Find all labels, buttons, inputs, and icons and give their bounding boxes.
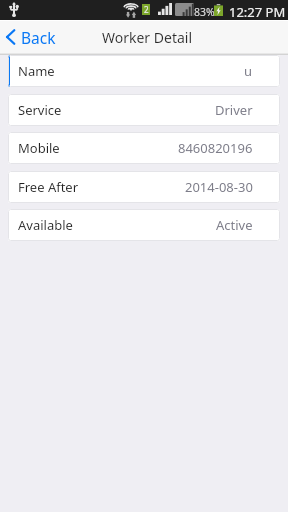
button[interactable]: Name bbox=[8, 55, 280, 87]
staticText: 2 bbox=[144, 4, 149, 15]
staticText: Available bbox=[18, 216, 73, 234]
staticText: Active bbox=[216, 216, 253, 234]
staticText: 8460820196 bbox=[178, 139, 253, 157]
button[interactable]: Available bbox=[8, 209, 280, 241]
button[interactable]: Mobile bbox=[8, 132, 280, 164]
button[interactable]: Back bbox=[0, 21, 64, 53]
staticText: Free After bbox=[18, 178, 79, 196]
staticText: Driver bbox=[215, 101, 253, 119]
staticText: Worker Detail bbox=[102, 28, 193, 47]
staticText: Service bbox=[18, 101, 62, 119]
staticText: 83% bbox=[194, 5, 215, 19]
staticText: 2014-08-30 bbox=[185, 178, 253, 196]
staticText: Name bbox=[18, 62, 55, 80]
staticText: 12:27 PM bbox=[229, 3, 286, 21]
staticText: Mobile bbox=[18, 139, 60, 157]
button[interactable]: Service bbox=[8, 94, 280, 126]
staticText: Back bbox=[21, 27, 56, 48]
button[interactable]: Free After bbox=[8, 171, 280, 203]
staticText: u bbox=[244, 62, 253, 80]
